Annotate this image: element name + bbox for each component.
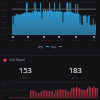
staticText: 配速 bbox=[38, 45, 44, 48]
staticText: 7'00 bbox=[1, 14, 6, 17]
staticText: 93 bbox=[1, 89, 4, 92]
staticText: 10'0 bbox=[1, 26, 6, 29]
staticText: 16:04 bbox=[25, 39, 31, 42]
staticText: 48:13 bbox=[56, 39, 62, 42]
staticText: 1:04:18 bbox=[72, 39, 80, 42]
staticText: 心率 (bpm) bbox=[9, 58, 26, 62]
staticText: 1:20:22 bbox=[90, 39, 98, 42]
staticText: 4'27 bbox=[1, 2, 6, 5]
staticText: 32:09 bbox=[41, 39, 47, 42]
staticText: 海拔 bbox=[51, 45, 57, 48]
staticText: 186 bbox=[1, 82, 5, 85]
button[interactable]: Heart rate bbox=[0, 56, 100, 100]
staticText: 8'30 bbox=[1, 20, 6, 23]
staticText: 11'3 bbox=[1, 32, 6, 35]
staticText: 183 bbox=[69, 65, 82, 75]
staticText: 0 bbox=[1, 95, 3, 98]
staticText: 153 bbox=[19, 65, 32, 75]
button[interactable]: 4'27 bbox=[0, 0, 100, 55]
staticText: 5'30 bbox=[1, 8, 6, 11]
staticText: 平均 bbox=[22, 76, 28, 79]
staticText: 0:00 bbox=[10, 39, 15, 42]
staticText: 最大 bbox=[72, 76, 78, 79]
other: Heart rate bbox=[3, 58, 7, 62]
